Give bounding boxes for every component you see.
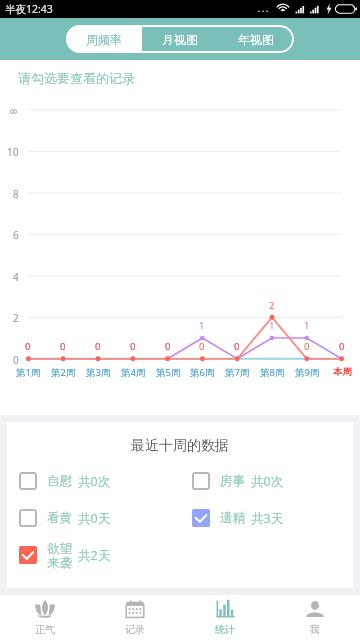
staticText: 第3周 [86,366,111,379]
staticText: 0 [25,340,31,353]
staticText: 第7周 [225,366,250,379]
button[interactable]: 欲望 来袭 [19,541,111,569]
button[interactable]: 记录 [90,595,180,640]
staticText: 第1周 [16,366,41,379]
staticText: 1 [269,319,275,332]
staticText: 年视图 [238,32,274,47]
staticText: 0 [60,340,66,353]
staticText: 1 [199,319,205,332]
staticText: 房事 [220,473,245,489]
other: 记录 [125,599,145,619]
staticText: 第9周 [295,366,320,379]
other: 我 [305,599,325,619]
button[interactable]: 房事 [192,467,284,495]
staticText: 第6周 [190,366,215,379]
staticText: 2 [13,311,19,325]
staticText: 0 [339,340,345,353]
staticText: 0 [95,340,101,353]
staticText: ∞ [9,105,19,118]
other: 统计 [215,599,235,619]
staticText: 4 [13,270,19,284]
staticText: 10 [7,145,19,159]
button[interactable]: 年视图 [218,25,294,53]
other: 正气 [35,599,55,619]
staticText: 0 [234,340,240,353]
staticText: 共3天 [251,510,284,527]
staticText: 0 [130,340,136,353]
staticText: 月视图 [162,32,198,47]
staticText: 记录 [125,623,145,636]
staticText: 欲望 来袭 [47,541,72,569]
staticText: 1 [304,319,310,332]
staticText: 0 [25,340,31,353]
button[interactable]: 统计 [180,595,270,640]
staticText: 遗精 [220,510,245,526]
staticText: 0 [95,340,101,353]
button[interactable]: 我 [270,595,360,640]
staticText: 共0次 [78,473,111,490]
button[interactable]: 遗精 [192,504,284,532]
staticText: 2 [269,299,275,312]
button[interactable]: 周频率 [66,25,142,53]
staticText: 自慰 [47,473,72,489]
staticText: 第2周 [51,366,76,379]
staticText: 第8周 [260,366,285,379]
staticText: 0 [130,340,136,353]
staticText: 请勾选要查看的记录 [18,70,135,86]
staticText: 半夜12:43 [5,2,53,16]
staticText: 共0次 [251,473,284,490]
staticText: 0 [339,340,345,353]
staticText: 0 [304,340,310,353]
staticText: 0 [165,340,171,353]
staticText: 我 [310,623,320,636]
staticText: 0 [60,340,66,353]
staticText: 共0天 [78,510,111,527]
staticText: 0 [13,353,19,367]
staticText: 正气 [35,623,55,636]
button[interactable]: 月视图 [142,25,218,53]
staticText: 第5周 [156,366,181,379]
staticText: 6 [13,228,19,242]
staticText: 0 [199,340,205,353]
staticText: 8 [13,187,19,201]
staticText: 本周 [333,366,352,378]
button[interactable]: 正气 [0,595,90,640]
staticText: 看黄 [47,510,72,526]
staticText: 最近十周的数据 [7,437,353,455]
button[interactable]: 看黄 [19,504,111,532]
staticText: 0 [165,340,171,353]
button[interactable]: 自慰 [19,467,111,495]
staticText: 周频率 [86,32,122,47]
staticText: 统计 [215,623,235,636]
staticText: 0 [234,340,240,353]
staticText: 第4周 [121,366,146,379]
staticText: 共2天 [78,547,111,564]
